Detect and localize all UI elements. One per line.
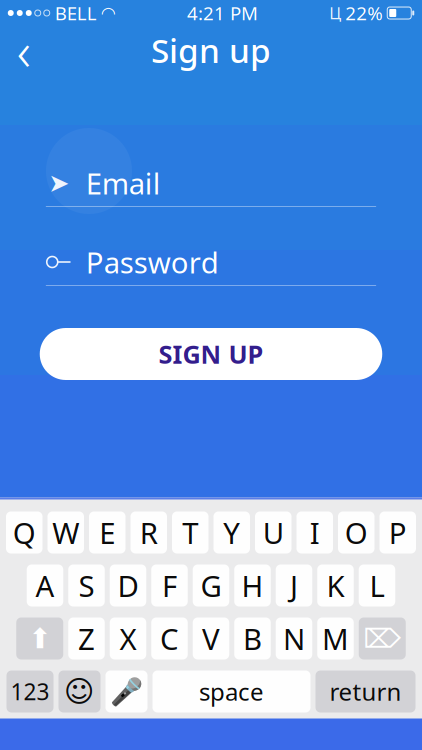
staticText: space: [199, 676, 264, 707]
button[interactable]: I: [296, 511, 333, 553]
staticText: L: [369, 566, 384, 605]
button[interactable]: 123: [6, 670, 53, 712]
button[interactable]: Z: [68, 617, 105, 659]
button[interactable]: D: [110, 564, 146, 606]
button[interactable]: Q: [6, 511, 42, 553]
staticText: T: [182, 513, 198, 552]
button[interactable]: SIGN UP: [40, 328, 382, 380]
staticText: 123: [10, 676, 49, 706]
button[interactable]: W: [47, 511, 84, 553]
button[interactable]: J: [276, 564, 312, 606]
staticText: ‹: [17, 15, 31, 85]
staticText: BELL: [55, 1, 97, 25]
staticText: J: [290, 566, 298, 605]
staticText: ⬆: [28, 623, 51, 654]
button[interactable]: X: [110, 617, 146, 659]
staticText: ⌦: [363, 623, 401, 654]
staticText: W: [52, 513, 79, 552]
staticText: E: [99, 513, 115, 552]
button[interactable]: F: [151, 564, 188, 606]
button[interactable]: Delete: [359, 617, 406, 659]
button[interactable]: O: [338, 511, 374, 553]
staticText: Q: [13, 513, 36, 552]
button[interactable]: N: [276, 617, 312, 659]
button[interactable]: Emoji: [58, 670, 100, 712]
staticText: C: [160, 619, 179, 658]
staticText: 4:21 PM: [187, 1, 258, 25]
button[interactable]: B: [234, 617, 271, 659]
button[interactable]: V: [193, 617, 229, 659]
staticText: R: [140, 513, 158, 552]
staticText: Email: [86, 163, 161, 202]
button[interactable]: L: [359, 564, 395, 606]
button[interactable]: Y: [213, 511, 250, 553]
button[interactable]: T: [172, 511, 208, 553]
staticText: S: [78, 566, 94, 605]
staticText: ◠: [101, 3, 116, 23]
staticText: return: [329, 676, 401, 707]
button[interactable]: G: [193, 564, 229, 606]
staticText: X: [119, 619, 136, 658]
staticText: K: [326, 566, 344, 605]
staticText: ➤: [48, 169, 69, 197]
staticText: U: [263, 513, 284, 552]
staticText: SIGN UP: [158, 337, 263, 371]
button[interactable]: Shift: [16, 617, 63, 659]
button[interactable]: K: [317, 564, 354, 606]
button[interactable]: C: [151, 617, 188, 659]
staticText: 22%: [345, 1, 383, 25]
staticText: F: [162, 566, 177, 605]
staticText: O: [345, 513, 368, 552]
staticText: Y: [223, 513, 240, 552]
button[interactable]: M: [317, 617, 354, 659]
staticText: M: [322, 619, 349, 658]
staticText: ☺: [64, 675, 95, 708]
button[interactable]: P: [379, 511, 416, 553]
button[interactable]: return: [315, 670, 415, 712]
staticText: D: [117, 566, 138, 605]
button[interactable]: Dictation: [105, 670, 147, 712]
button[interactable]: R: [130, 511, 167, 553]
staticText: B: [243, 619, 262, 658]
staticText: 🎤: [110, 676, 143, 707]
staticText: Password: [86, 242, 219, 281]
staticText: Sign up: [151, 28, 271, 72]
button[interactable]: U: [255, 511, 291, 553]
button[interactable]: S: [68, 564, 105, 606]
staticText: I: [310, 513, 320, 552]
staticText: Z: [78, 619, 95, 658]
button[interactable]: E: [89, 511, 125, 553]
staticText: A: [35, 566, 54, 605]
staticText: V: [202, 619, 220, 658]
staticText: P: [389, 513, 407, 552]
button[interactable]: A: [27, 564, 63, 606]
button[interactable]: H: [234, 564, 271, 606]
staticText: Ц: [329, 2, 341, 24]
staticText: G: [200, 566, 221, 605]
button[interactable]: space: [152, 670, 310, 712]
staticText: H: [241, 566, 263, 605]
staticText: N: [283, 619, 305, 658]
button[interactable]: Back: [2, 28, 46, 72]
